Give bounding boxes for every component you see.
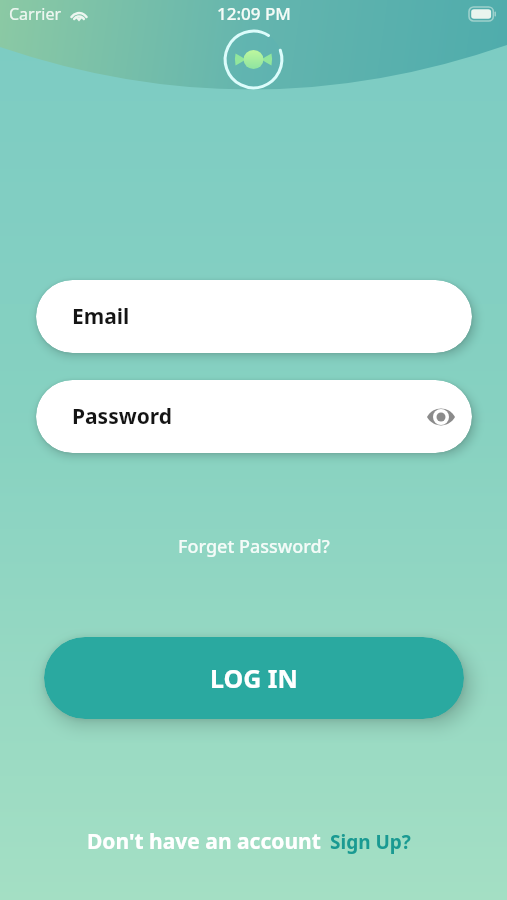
button[interactable]: Show password xyxy=(426,405,456,429)
staticText: Email xyxy=(72,302,130,331)
staticText: Password xyxy=(72,402,173,431)
button[interactable]: LOG IN xyxy=(44,637,464,719)
staticText: Forget Password? xyxy=(178,534,330,559)
staticText: Don't have an account xyxy=(87,827,321,856)
button[interactable]: Email xyxy=(36,280,472,353)
staticText: Carrier xyxy=(9,3,62,25)
button[interactable]: Password xyxy=(36,380,472,453)
staticText: Sign Up? xyxy=(330,829,411,855)
button[interactable]: Forget Password? xyxy=(168,530,340,563)
button[interactable]: Sign Up? xyxy=(330,829,411,855)
staticText: LOG IN xyxy=(210,661,298,695)
staticText: 12:09 PM xyxy=(217,2,291,25)
